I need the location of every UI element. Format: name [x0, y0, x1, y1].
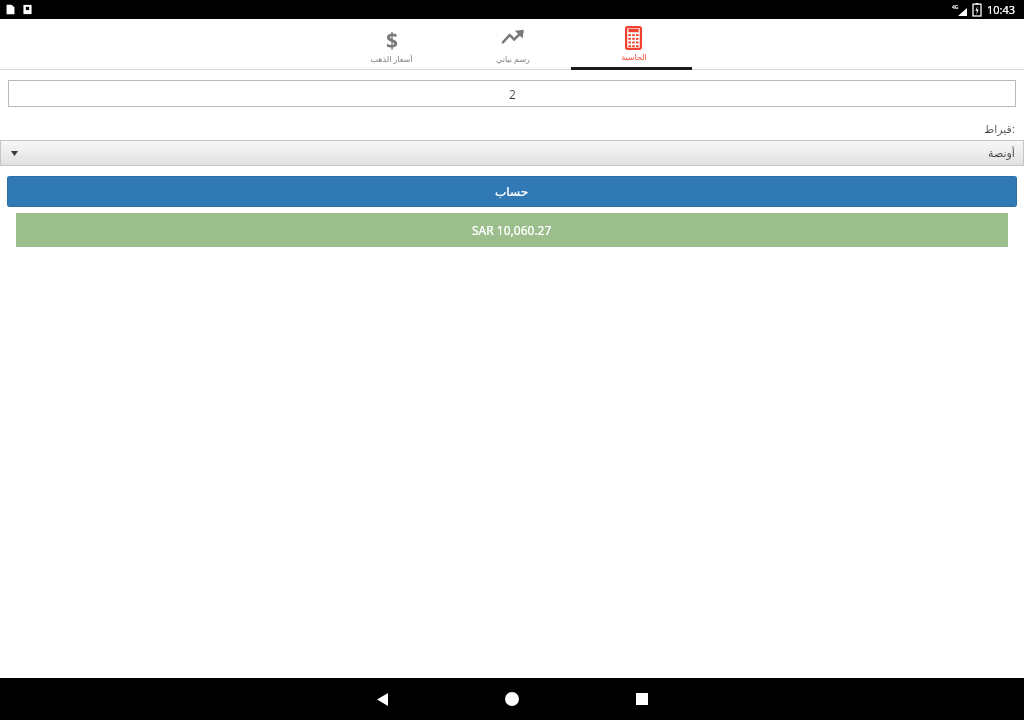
staticText: حساب	[495, 185, 529, 199]
staticText: الحاسبة	[621, 53, 647, 62]
staticText: رسم بياني	[496, 53, 530, 64]
staticText: قيراط:	[984, 121, 1015, 136]
button[interactable]: Home	[498, 685, 526, 713]
button[interactable]: $	[331, 19, 452, 70]
staticText: أونصة	[988, 147, 1015, 160]
button[interactable]: رسم بياني	[452, 19, 573, 70]
staticText: SAR 10,060.27	[472, 222, 552, 238]
button[interactable]: أونصة	[0, 140, 1024, 166]
button[interactable]: Recents	[628, 685, 656, 713]
button[interactable]: 2	[8, 80, 1016, 107]
button[interactable]: حساب	[7, 176, 1017, 207]
button[interactable]: الحاسبة	[573, 19, 694, 70]
staticText: 4G	[952, 4, 959, 11]
staticText: 10:43	[987, 2, 1016, 17]
staticText: أسعار الذهب	[370, 53, 413, 64]
staticText: 2	[509, 86, 516, 102]
button[interactable]: Back	[368, 685, 396, 713]
staticText: $	[386, 26, 399, 50]
